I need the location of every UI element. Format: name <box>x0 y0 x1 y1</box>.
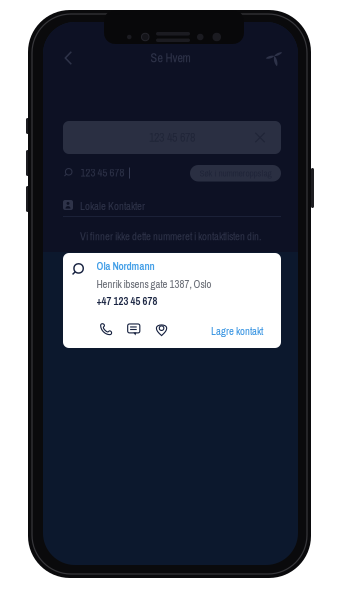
button[interactable]: Map <box>155 322 168 336</box>
staticText: Vi finner ikke dette nummeret i kontaktl… <box>80 229 261 244</box>
staticText: Se Hvem <box>150 50 190 66</box>
button[interactable]: Søk i nummeroppslag <box>190 165 281 181</box>
staticText: Lokale Kontakter <box>80 199 145 213</box>
button[interactable]: Back <box>54 45 82 71</box>
staticText: Henrik ibsens gate 1387, Oslo <box>96 277 211 291</box>
staticText: 123 45 678 <box>149 129 195 146</box>
staticText: Lagre kontakt <box>211 324 263 338</box>
staticText: Ola Nordmann <box>96 259 154 273</box>
button[interactable]: Telenor <box>261 45 287 71</box>
staticText: 123 45 678 <box>80 165 124 180</box>
button[interactable]: Message <box>127 322 140 336</box>
button[interactable]: Ola Nordmann <box>63 253 281 348</box>
staticText: +47 123 45 678 <box>96 294 157 308</box>
button[interactable]: Call <box>99 322 113 336</box>
button[interactable]: Lagre kontakt <box>211 324 263 338</box>
